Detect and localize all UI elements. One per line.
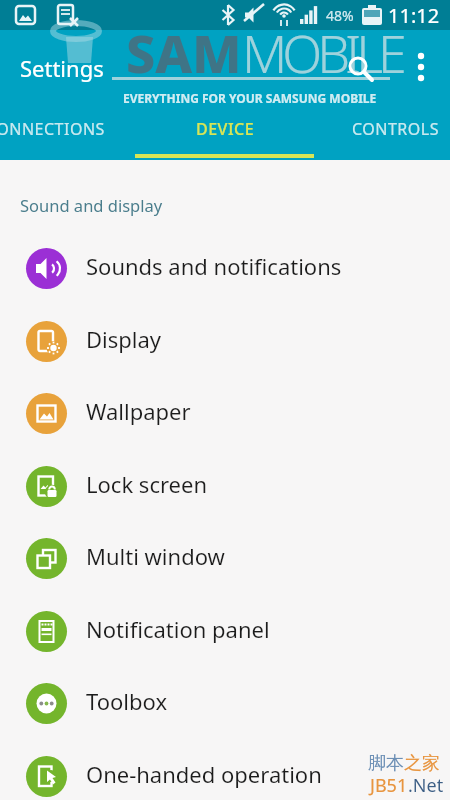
staticText: 之家 xyxy=(404,752,440,775)
button[interactable]: Wallpaper xyxy=(0,377,450,449)
staticText: 11:12 xyxy=(388,2,440,29)
button[interactable]: Sounds and notifications xyxy=(0,232,450,304)
button[interactable]: CONNECTIONS xyxy=(0,112,130,158)
button[interactable] xyxy=(340,50,380,86)
button[interactable]: CONTROLS xyxy=(352,112,450,158)
staticText: .Net xyxy=(408,773,444,798)
staticText: CONTROLS xyxy=(352,118,439,140)
button[interactable]: Notification panel xyxy=(0,595,450,667)
staticText: Lock screen xyxy=(86,469,208,499)
staticText: Sounds and notifications xyxy=(86,251,342,281)
staticText: Sound and display xyxy=(20,194,163,216)
staticText: Multi window xyxy=(86,541,225,571)
staticText: SAM xyxy=(126,17,242,88)
button[interactable]: One-handed operation xyxy=(0,740,450,800)
button[interactable]: Multi window xyxy=(0,522,450,594)
staticText: Toolbox xyxy=(86,686,168,716)
staticText: Notification panel xyxy=(86,614,270,644)
staticText: EVERYTHING FOR YOUR SAMSUNG MOBILE xyxy=(123,90,377,106)
button[interactable] xyxy=(406,48,436,88)
staticText: 48% xyxy=(326,6,354,25)
staticText: Wallpaper xyxy=(86,396,191,426)
staticText: Settings xyxy=(20,53,104,83)
button[interactable]: DEVICE xyxy=(135,112,315,158)
button[interactable]: Toolbox xyxy=(0,667,450,739)
staticText: 脚本 xyxy=(368,752,404,775)
staticText: MOBILE xyxy=(242,17,402,88)
button[interactable]: Display xyxy=(0,305,450,377)
staticText: Display xyxy=(86,324,162,354)
staticText: One-handed operation xyxy=(86,759,322,789)
staticText: JB51 xyxy=(370,773,408,798)
staticText: CONNECTIONS xyxy=(0,118,105,140)
staticText: DEVICE xyxy=(196,118,255,140)
button[interactable]: Lock screen xyxy=(0,450,450,522)
